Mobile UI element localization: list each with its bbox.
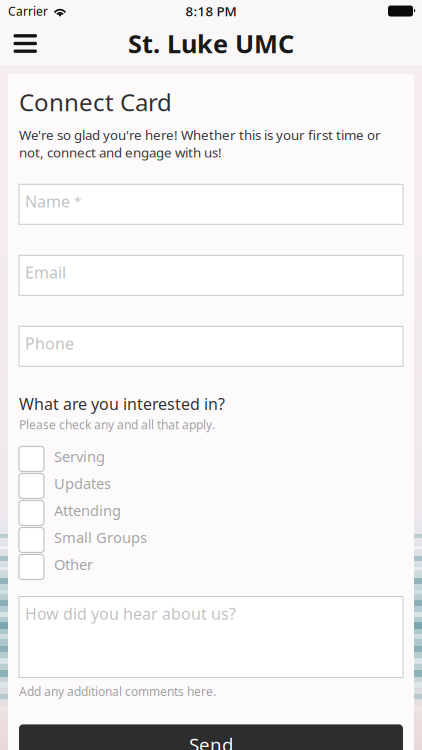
button[interactable]: Small Groups [19,527,403,552]
button[interactable]: Serving [19,446,403,471]
staticText: Other [54,554,93,574]
staticText: 8:18 PM [185,2,236,20]
button[interactable]: How did you hear about us? [19,596,403,677]
staticText: How did you hear about us? [25,603,236,624]
staticText: Please check any and all that apply. [19,416,215,432]
button[interactable]: Send [19,724,403,750]
button[interactable]: Other [19,554,403,579]
staticText: Carrier [8,3,48,19]
button[interactable]: Updates [19,473,403,498]
staticText: What are you interested in? [19,393,225,414]
staticText: Name [25,191,70,212]
staticText: Email [25,262,66,283]
staticText: Send [189,732,233,750]
staticText: St. Luke UMC [128,27,294,60]
staticText: Small Groups [54,527,147,547]
staticText: Add any additional comments here. [19,683,216,699]
staticText: * [74,193,81,210]
button[interactable]: Menu [0,22,37,64]
button[interactable]: Email [19,255,403,295]
staticText: Phone [25,333,74,354]
button[interactable]: Name [19,184,403,224]
staticText: Updates [54,473,111,493]
staticText: Serving [54,446,105,466]
staticText: We're so glad you're here! Whether this … [19,126,381,161]
staticText: Connect Card [19,86,172,118]
staticText: Attending [54,500,121,520]
button[interactable]: Phone [19,326,403,366]
button[interactable]: Attending [19,500,403,525]
